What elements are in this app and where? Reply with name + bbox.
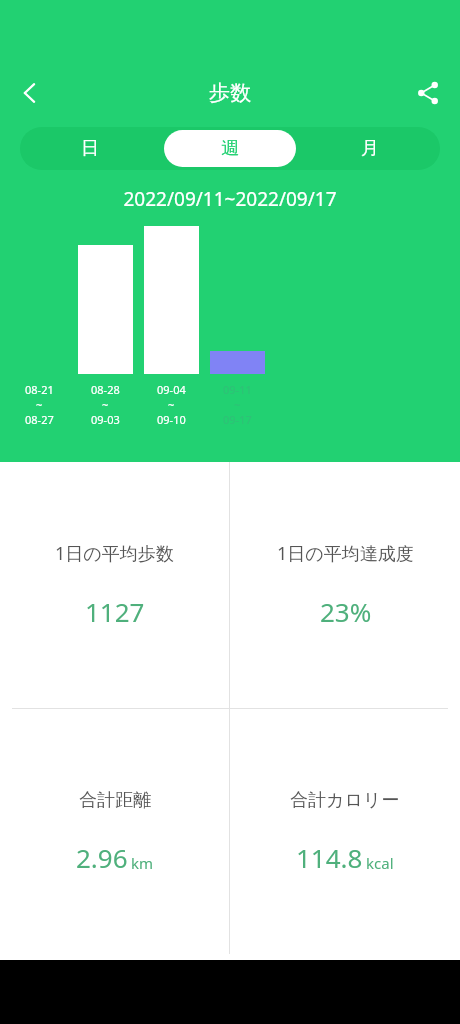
staticText: 23% xyxy=(320,594,372,629)
staticText: 09-17 xyxy=(223,412,252,427)
staticText: 2022/09/11~2022/09/17 xyxy=(0,186,460,212)
button[interactable]: 日 xyxy=(24,130,156,167)
staticText: ~ xyxy=(36,397,43,412)
staticText: 08-28 xyxy=(91,382,120,397)
staticText: km xyxy=(131,853,154,873)
staticText: 09-11 xyxy=(223,382,252,397)
staticText: 09-10 xyxy=(157,412,186,427)
button[interactable]: Back xyxy=(6,69,54,117)
button[interactable]: 1日の平均達成度 xyxy=(230,462,460,708)
staticText: 月 xyxy=(361,137,379,160)
staticText: 週 xyxy=(221,137,239,160)
staticText: 2.96 xyxy=(76,840,128,875)
staticText: 歩数 xyxy=(209,80,251,106)
button[interactable]: 合計カロリー xyxy=(230,709,460,954)
button[interactable]: 1日の平均歩数 xyxy=(0,462,229,708)
button[interactable]: 月 xyxy=(304,130,436,167)
staticText: 09-03 xyxy=(91,412,120,427)
staticText: 08-27 xyxy=(25,412,54,427)
staticText: 合計カロリー xyxy=(290,789,400,812)
staticText: 1日の平均達成度 xyxy=(277,541,414,566)
button[interactable]: Share xyxy=(404,69,452,117)
button[interactable]: 週 xyxy=(164,130,296,167)
staticText: 合計距離 xyxy=(79,789,151,812)
staticText: kcal xyxy=(366,853,394,873)
staticText: 09-04 xyxy=(157,382,186,397)
staticText: 1127 xyxy=(85,594,145,629)
staticText: 114.8 xyxy=(296,840,363,875)
button[interactable]: 合計距離 xyxy=(0,709,229,954)
staticText: ~ xyxy=(168,397,175,412)
staticText: 日 xyxy=(81,137,99,160)
staticText: 1日の平均歩数 xyxy=(55,541,174,566)
staticText: ~ xyxy=(102,397,109,412)
staticText: 08-21 xyxy=(25,382,54,397)
